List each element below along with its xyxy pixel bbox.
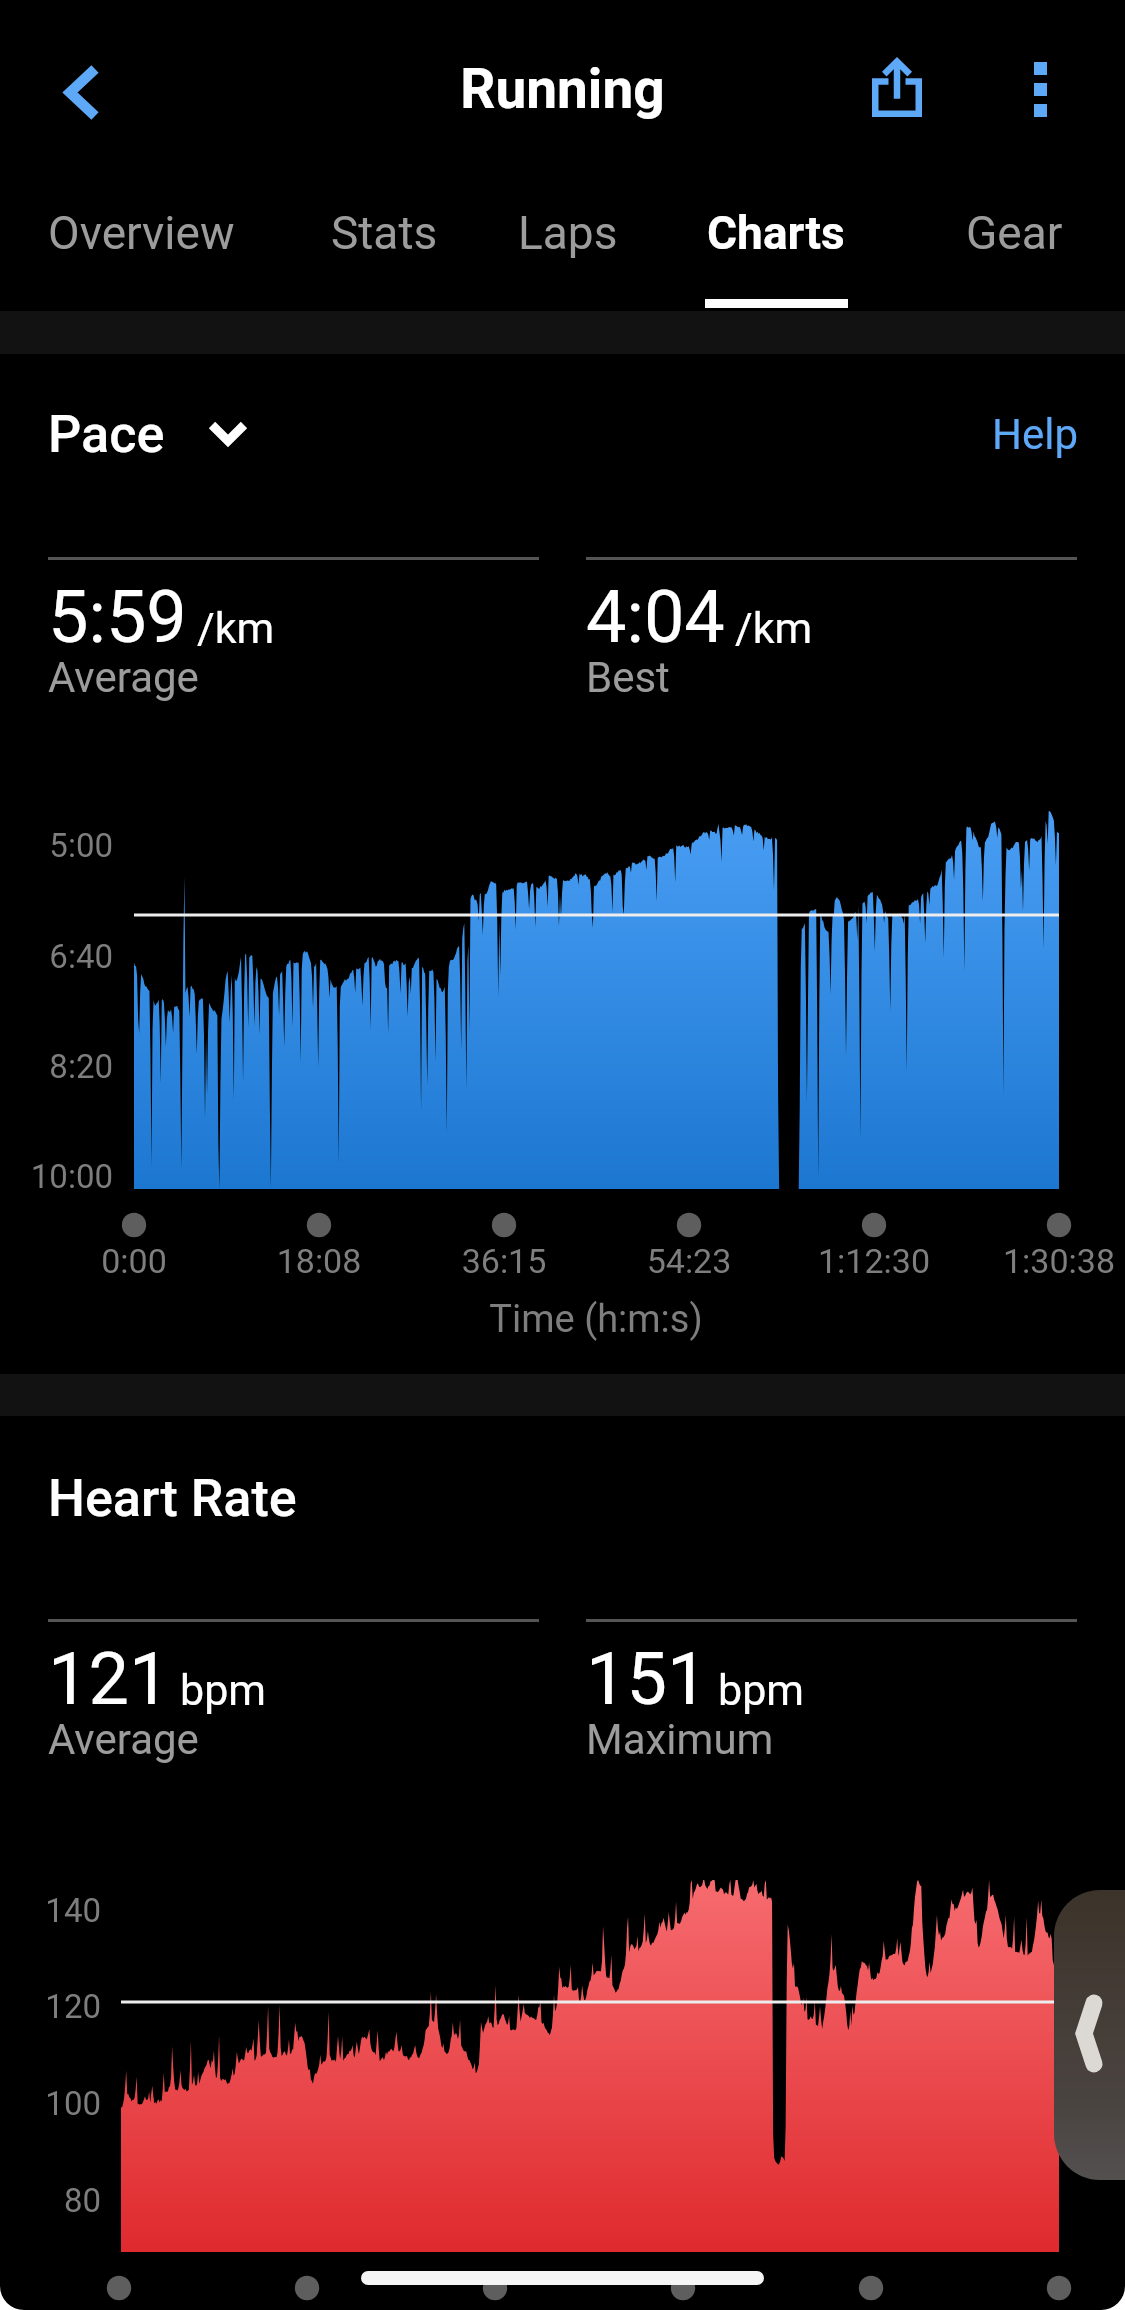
staticText: 36:15: [374, 1241, 634, 1281]
staticText: Charts: [707, 206, 845, 260]
button[interactable]: Overview: [21, 182, 261, 310]
button[interactable]: Help: [980, 402, 1091, 467]
staticText: 6:40: [0, 937, 113, 976]
staticText: bpm: [718, 1665, 804, 1715]
staticText: 18:08: [189, 1241, 449, 1281]
button[interactable]: More options: [986, 32, 1096, 142]
staticText: 5:59: [48, 575, 187, 659]
staticText: Running: [0, 57, 1125, 121]
staticText: Overview: [48, 206, 235, 260]
staticText: 1:12:30: [744, 1241, 1004, 1281]
button[interactable]: Gear: [894, 182, 1125, 310]
staticText: Best: [586, 653, 670, 702]
staticText: Maximum: [586, 1715, 774, 1764]
staticText: 4:04: [586, 575, 725, 659]
staticText: Heart Rate: [48, 1468, 297, 1529]
staticText: bpm: [180, 1665, 266, 1715]
staticText: /km: [197, 603, 275, 653]
button[interactable]: Stats: [264, 182, 504, 310]
staticText: Stats: [331, 206, 438, 260]
staticText: 100: [0, 2084, 101, 2123]
staticText: 140: [0, 1891, 101, 1930]
staticText: Help: [992, 410, 1079, 459]
button[interactable]: Laps: [448, 182, 688, 310]
staticText: Average: [48, 1715, 199, 1764]
staticText: 80: [0, 2181, 101, 2220]
staticText: Pace: [48, 404, 165, 465]
staticText: 10:00: [0, 1157, 113, 1196]
button[interactable]: Expand panel: [1054, 1890, 1125, 2180]
staticText: Average: [48, 653, 199, 702]
button[interactable]: Charts: [656, 182, 896, 310]
staticText: 1:30:38: [929, 1241, 1125, 1281]
staticText: /km: [735, 603, 813, 653]
staticText: Gear: [966, 206, 1063, 260]
staticText: Time (h:m:s): [346, 1297, 846, 1342]
staticText: 5:00: [0, 826, 113, 865]
button[interactable]: Pace: [48, 404, 244, 465]
staticText: 121: [48, 1637, 170, 1721]
staticText: 54:23: [559, 1241, 819, 1281]
button[interactable]: Back: [25, 35, 135, 145]
staticText: 0:00: [4, 1241, 264, 1281]
button[interactable]: Share: [842, 32, 952, 142]
staticText: Laps: [518, 206, 618, 260]
staticText: 151: [586, 1637, 708, 1721]
staticText: 120: [0, 1987, 101, 2026]
staticText: 8:20: [0, 1047, 113, 1086]
